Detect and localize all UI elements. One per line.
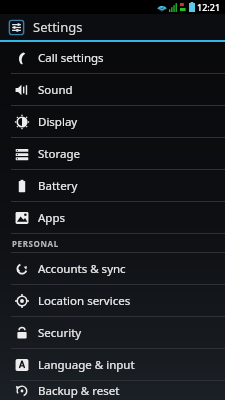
staticText: Security (38, 325, 82, 341)
button[interactable]: Security (0, 317, 225, 348)
staticText: Storage (38, 146, 80, 162)
staticText: Settings (33, 18, 83, 36)
button[interactable]: Storage (0, 138, 225, 169)
staticText: Backup & reset (38, 383, 120, 399)
button[interactable]: Display (0, 106, 225, 137)
staticText: Accounts & sync (38, 261, 126, 277)
staticText: Language & input (38, 357, 135, 373)
button[interactable]: Apps (0, 202, 225, 233)
staticText: Location services (38, 293, 131, 309)
staticText: Sound (38, 82, 73, 98)
staticText: Display (38, 114, 78, 130)
staticText: Call settings (38, 50, 104, 66)
staticText: 12:21 (197, 1, 221, 13)
button[interactable]: Sound (0, 74, 225, 105)
button[interactable]: Call settings (0, 42, 225, 73)
staticText: Battery (38, 178, 78, 194)
button[interactable]: Battery (0, 170, 225, 201)
button[interactable]: Language & input (0, 349, 225, 380)
button[interactable]: Location services (0, 285, 225, 316)
button[interactable]: Backup & reset (0, 381, 225, 400)
staticText: Apps (38, 210, 66, 226)
button[interactable]: Accounts & sync (0, 253, 225, 284)
button[interactable]: Settings (0, 14, 225, 40)
staticText: PERSONAL (12, 238, 59, 249)
